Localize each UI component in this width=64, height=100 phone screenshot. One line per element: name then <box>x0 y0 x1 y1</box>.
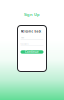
staticText: Welcome back <box>20 30 41 33</box>
staticText: Email <box>20 37 23 39</box>
staticText: Password <box>20 43 28 45</box>
button[interactable]: Continue <box>20 50 43 54</box>
staticText: Continue <box>25 50 39 54</box>
staticText: Sign Up <box>24 12 40 17</box>
